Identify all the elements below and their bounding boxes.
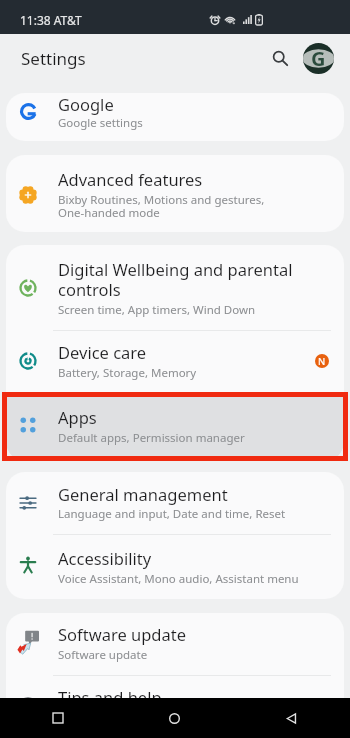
staticText: Default apps, Permission manager (58, 430, 245, 446)
button[interactable]: Back (233, 698, 350, 738)
staticText: Useful tips, Contact us (58, 710, 179, 726)
staticText: Software update (58, 647, 148, 663)
staticText: Google (58, 93, 114, 115)
button[interactable]: Google (6, 93, 344, 141)
button[interactable]: Accessibility (6, 535, 344, 599)
button[interactable]: General management (6, 472, 344, 535)
staticText: 11:38 AT&T (20, 12, 82, 28)
staticText: Screen time, App timers, Wind Down (58, 302, 256, 318)
button[interactable]: Home (116, 698, 233, 738)
staticText: Device care (58, 341, 147, 363)
staticText: Digital Wellbeing and parental controls (58, 258, 293, 301)
button[interactable]: Digital Wellbeing and parental controls (6, 245, 344, 331)
button[interactable]: Search (268, 46, 292, 70)
button[interactable]: Tips and help (6, 676, 344, 738)
button[interactable]: Apps (6, 396, 344, 461)
staticText: General management (58, 483, 228, 505)
staticText: Apps (58, 406, 97, 428)
button[interactable]: Account (303, 43, 334, 74)
button[interactable]: Advanced features (6, 155, 344, 232)
staticText: N (318, 355, 326, 368)
staticText: G (311, 45, 326, 72)
staticText: Battery, Storage, Memory (58, 365, 197, 381)
button[interactable]: Recent apps (0, 698, 116, 738)
button[interactable]: Device care (6, 331, 344, 396)
staticText: Voice Assistant, Mono audio, Assistant m… (58, 571, 299, 587)
staticText: Google settings (58, 115, 143, 131)
staticText: Settings (21, 47, 86, 70)
staticText: Software update (58, 623, 186, 645)
staticText: Language and input, Date and time, Reset (58, 506, 286, 522)
staticText: Bixby Routines, Motions and gestures, On… (58, 192, 265, 221)
staticText: Advanced features (58, 168, 203, 190)
staticText: Accessibility (58, 547, 152, 569)
staticText: Tips and help (58, 686, 162, 708)
button[interactable]: Software update (6, 613, 344, 676)
